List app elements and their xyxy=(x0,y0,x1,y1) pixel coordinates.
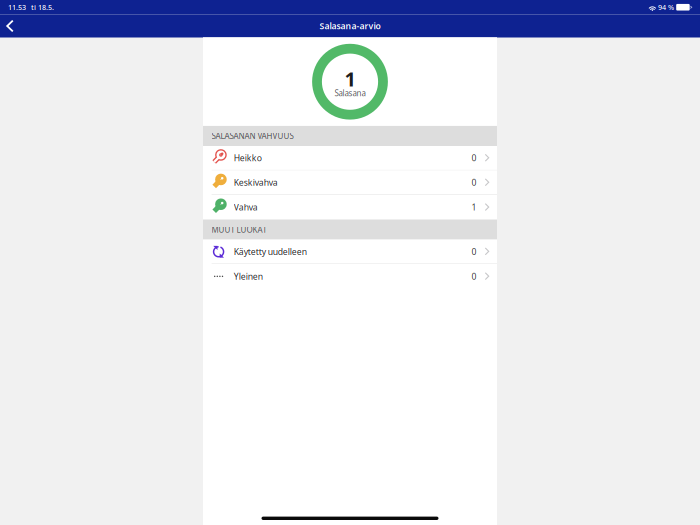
staticText: Vahva xyxy=(234,201,258,213)
button[interactable]: Heikko xyxy=(203,146,497,170)
staticText: Salasana xyxy=(334,88,365,99)
staticText: 11.53 xyxy=(8,2,26,12)
staticText: Salasana-arvio xyxy=(319,20,380,32)
button[interactable]: Keskivahva xyxy=(203,170,497,195)
staticText: 94 % xyxy=(658,2,674,12)
staticText: MUUT LUOKAT xyxy=(212,224,267,235)
staticText: 1 xyxy=(344,65,355,92)
button[interactable]: Yleinen xyxy=(203,264,497,289)
button[interactable]: Vahva xyxy=(203,195,497,219)
button[interactable]: Käytetty uudelleen xyxy=(203,240,497,264)
staticText: 1 xyxy=(471,201,476,213)
staticText: 0 xyxy=(471,152,476,164)
staticText: 0 xyxy=(471,246,476,257)
staticText: Yleinen xyxy=(234,270,263,282)
staticText: 0 xyxy=(471,176,476,188)
staticText: Keskivahva xyxy=(234,176,278,188)
staticText: SALASANAN VAHVUUS xyxy=(212,130,294,141)
staticText: Käytetty uudelleen xyxy=(234,246,307,257)
staticText: ti 18.5. xyxy=(31,2,54,12)
staticText: 0 xyxy=(471,270,476,282)
button[interactable]: Back xyxy=(0,14,30,38)
staticText: Heikko xyxy=(234,152,262,164)
